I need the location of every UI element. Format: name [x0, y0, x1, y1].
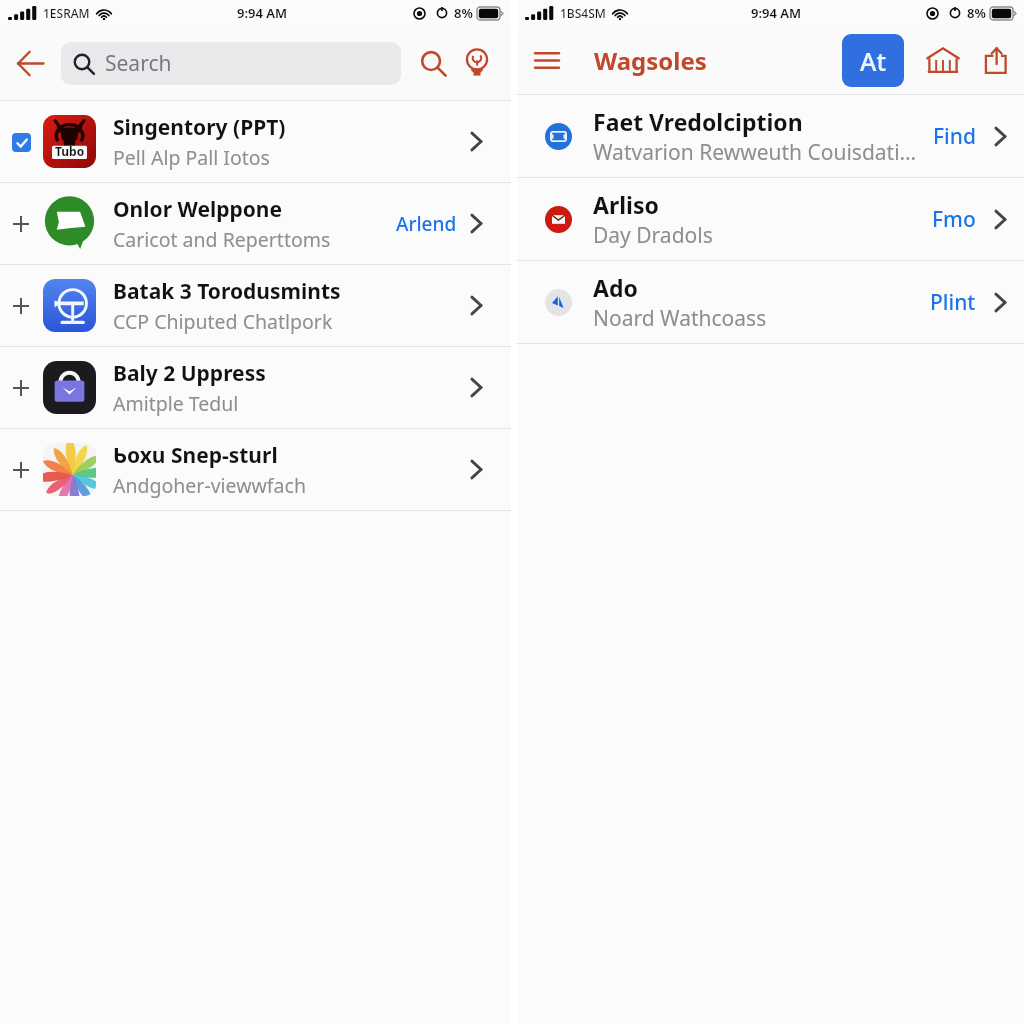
staticText: Day Dradols — [593, 221, 713, 250]
button[interactable]: Add — [10, 459, 32, 481]
staticText: Wagsoles — [594, 44, 707, 77]
staticText: Ado — [593, 272, 638, 303]
staticText: Amitple Tedul — [113, 390, 239, 417]
staticText: Faet Vredolciption — [593, 106, 803, 137]
staticText: 9:94 AM — [751, 4, 802, 22]
staticText: Noard Wathcoass — [593, 304, 767, 333]
button[interactable]: Add — [0, 347, 511, 428]
button[interactable]: Search — [61, 42, 401, 85]
staticText: At — [860, 44, 886, 78]
staticText: Caricot and Reperttoms — [113, 226, 331, 253]
button[interactable]: Share — [976, 39, 1018, 81]
button[interactable]: Bank — [922, 39, 964, 81]
button[interactable]: Tips — [457, 43, 497, 83]
button[interactable]: Arliso — [517, 178, 1024, 260]
staticText: Onlor Welppone — [113, 195, 283, 224]
staticText: Arliso — [593, 189, 659, 220]
staticText: Arlend — [396, 211, 457, 237]
button[interactable]: Selected — [10, 131, 32, 153]
staticText: Batak 3 Torodusmints — [113, 277, 341, 306]
staticText: Ƅoxu Snep-sturl — [113, 441, 278, 470]
staticText: Watvarion Rewweuth Couisdation... — [593, 138, 919, 167]
button[interactable]: Selected — [0, 101, 511, 182]
button[interactable]: Add — [10, 295, 32, 317]
staticText: Pell Alp Pall Iotos — [113, 144, 270, 171]
staticText: Plint — [930, 288, 976, 317]
staticText: 1BS4SM — [560, 5, 606, 21]
button[interactable]: Add — [0, 183, 511, 264]
staticText: Andgoher-viewwfach — [113, 472, 306, 499]
staticText: 8% — [454, 4, 473, 22]
button[interactable]: Menu — [526, 39, 568, 81]
staticText: Baly 2 Uppress — [113, 359, 266, 388]
button[interactable]: Add — [0, 429, 511, 510]
staticText: Tubo — [55, 143, 85, 159]
button[interactable]: Search — [413, 43, 453, 83]
button[interactable]: Add — [10, 377, 32, 399]
staticText: 8% — [967, 4, 986, 22]
button[interactable]: Add — [10, 213, 32, 235]
staticText: Singentory (PPT) — [113, 113, 286, 142]
staticText: CCP Chiputed Chatlpork — [113, 308, 333, 335]
staticText: 9:94 AM — [237, 4, 288, 22]
button[interactable]: Back — [8, 41, 52, 85]
button[interactable]: At — [842, 34, 904, 87]
staticText: 1ESRAM — [43, 5, 90, 21]
button[interactable]: Add — [0, 265, 511, 346]
staticText: Fmo — [932, 205, 976, 234]
button[interactable]: Faet Vredolciption — [517, 95, 1024, 177]
staticText: Search — [105, 49, 172, 78]
button[interactable]: Ado — [517, 261, 1024, 343]
staticText: Find — [933, 122, 976, 151]
